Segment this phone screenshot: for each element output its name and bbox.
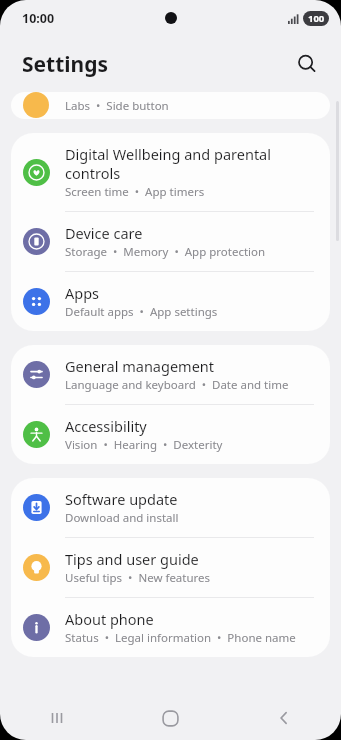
staticText: Tips and user guide bbox=[65, 549, 199, 569]
staticText: Screen time • App timers bbox=[65, 184, 205, 200]
button[interactable]: Digital Wellbeing and parental controls bbox=[11, 133, 330, 211]
staticText: Settings bbox=[22, 50, 109, 79]
button[interactable]: Recents bbox=[0, 696, 113, 740]
staticText: About phone bbox=[65, 609, 154, 629]
staticText: Accessibility bbox=[65, 416, 147, 436]
button[interactable]: Search bbox=[287, 44, 327, 84]
button[interactable]: Home bbox=[113, 696, 227, 740]
staticText: Device care bbox=[65, 223, 143, 243]
button[interactable]: Apps bbox=[11, 272, 330, 331]
staticText: Download and install bbox=[65, 510, 179, 526]
staticText: Labs • Side button bbox=[65, 98, 169, 114]
button[interactable]: General management bbox=[11, 345, 330, 404]
staticText: Apps bbox=[65, 283, 100, 303]
staticText: Vision • Hearing • Dexterity bbox=[65, 437, 223, 453]
staticText: Digital Wellbeing and parental controls bbox=[65, 144, 316, 183]
button[interactable]: Back bbox=[227, 696, 341, 740]
button[interactable]: Tips and user guide bbox=[11, 538, 330, 597]
staticText: Storage • Memory • App protection bbox=[65, 244, 266, 260]
staticText: 10:00 bbox=[22, 10, 55, 27]
staticText: Language and keyboard • Date and time bbox=[65, 377, 289, 393]
staticText: 100 bbox=[308, 12, 325, 25]
button[interactable]: Labs • Side button bbox=[11, 92, 330, 119]
button[interactable]: About phone bbox=[11, 598, 330, 657]
staticText: Status • Legal information • Phone name bbox=[65, 630, 296, 646]
staticText: General management bbox=[65, 356, 215, 376]
staticText: Useful tips • New features bbox=[65, 570, 211, 586]
staticText: Default apps • App settings bbox=[65, 304, 218, 320]
staticText: Software update bbox=[65, 489, 178, 509]
button[interactable]: Accessibility bbox=[11, 405, 330, 464]
button[interactable]: Device care bbox=[11, 212, 330, 271]
button[interactable]: Software update bbox=[11, 478, 330, 537]
